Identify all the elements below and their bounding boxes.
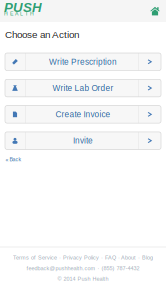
button[interactable]: Home — [150, 6, 166, 16]
staticText: Invite — [73, 136, 93, 145]
staticText: feedback@pushhealth.com · (855) 787-4432 — [26, 265, 139, 271]
button[interactable]: Write Prescription — [5, 53, 161, 70]
button[interactable]: « Back — [5, 156, 21, 162]
staticText: PUSH — [4, 0, 42, 15]
staticText: Create Invoice — [55, 110, 110, 119]
staticText: Terms of Service · Privacy Policy · FAQ … — [13, 254, 153, 261]
button[interactable]: Create Invoice — [5, 106, 161, 123]
staticText: Choose an Action — [5, 29, 79, 40]
button[interactable]: Write Lab Order — [5, 79, 161, 97]
staticText: © 2014 Push Health — [57, 276, 108, 282]
staticText: Write Lab Order — [52, 83, 113, 93]
staticText: Write Prescription — [49, 57, 117, 66]
staticText: « Back — [5, 156, 21, 162]
staticText: H E A L T H — [4, 11, 34, 16]
button[interactable]: Invite — [5, 132, 161, 149]
